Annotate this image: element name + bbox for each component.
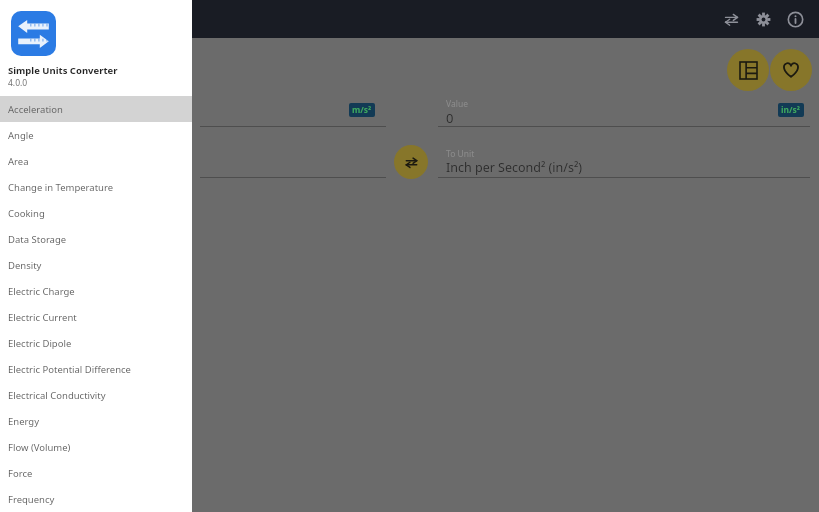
button[interactable]: Electric Potential Difference: [0, 356, 192, 382]
staticText: in/s²: [781, 104, 801, 116]
staticText: Electric Potential Difference: [8, 363, 131, 376]
staticText: Data Storage: [8, 233, 67, 246]
button[interactable]: To Unit: [438, 140, 810, 177]
button[interactable]: Density: [0, 252, 192, 278]
staticText: Inch per Second² (in/s²): [446, 159, 583, 176]
staticText: Force: [8, 467, 33, 480]
staticText: Electrical Conductivity: [8, 389, 106, 402]
staticText: To Unit: [446, 148, 475, 160]
button[interactable]: Swap from and to units: [394, 145, 428, 179]
button[interactable]: Electric Dipole: [0, 330, 192, 356]
button[interactable]: Area: [0, 148, 192, 174]
button[interactable]: Force: [0, 460, 192, 486]
button[interactable]: Settings: [747, 3, 779, 35]
staticText: Electric Current: [8, 311, 77, 324]
staticText: Acceleration: [8, 103, 63, 116]
button[interactable]: Value: [438, 93, 810, 126]
staticText: Density: [8, 259, 42, 272]
button[interactable]: m/s²: [352, 104, 372, 116]
button[interactable]: Swap units: [715, 3, 747, 35]
staticText: Area: [8, 155, 29, 168]
button[interactable]: Data Storage: [0, 226, 192, 252]
staticText: Value: [446, 98, 468, 110]
staticText: m/s²: [352, 104, 372, 116]
staticText: 4.0.0: [8, 77, 28, 89]
staticText: Frequency: [8, 493, 55, 506]
staticText: Electric Dipole: [8, 337, 72, 350]
button[interactable]: Electrical Conductivity: [0, 382, 192, 408]
button[interactable]: in/s²: [781, 104, 801, 116]
staticText: Flow (Volume): [8, 441, 71, 454]
button[interactable]: Change in Temperature: [0, 174, 192, 200]
staticText: Angle: [8, 129, 34, 142]
button[interactable]: Frequency: [0, 486, 192, 512]
staticText: 0: [446, 109, 454, 127]
button[interactable]: Electric Current: [0, 304, 192, 330]
button[interactable]: Favourites: [770, 49, 812, 91]
staticText: Change in Temperature: [8, 181, 114, 194]
staticText: Energy: [8, 415, 40, 428]
staticText: Cooking: [8, 207, 45, 220]
button[interactable]: [200, 93, 386, 123]
staticText: Simple Units Converter: [8, 64, 118, 77]
staticText: Electric Charge: [8, 285, 75, 298]
button[interactable]: Electric Charge: [0, 278, 192, 304]
button[interactable]: Cooking: [0, 200, 192, 226]
button[interactable]: Flow (Volume): [0, 434, 192, 460]
button[interactable]: Info: [779, 3, 811, 35]
button[interactable]: Angle: [0, 122, 192, 148]
button[interactable]: Unit table: [727, 49, 769, 91]
button[interactable]: Acceleration: [0, 96, 192, 122]
button[interactable]: Energy: [0, 408, 192, 434]
